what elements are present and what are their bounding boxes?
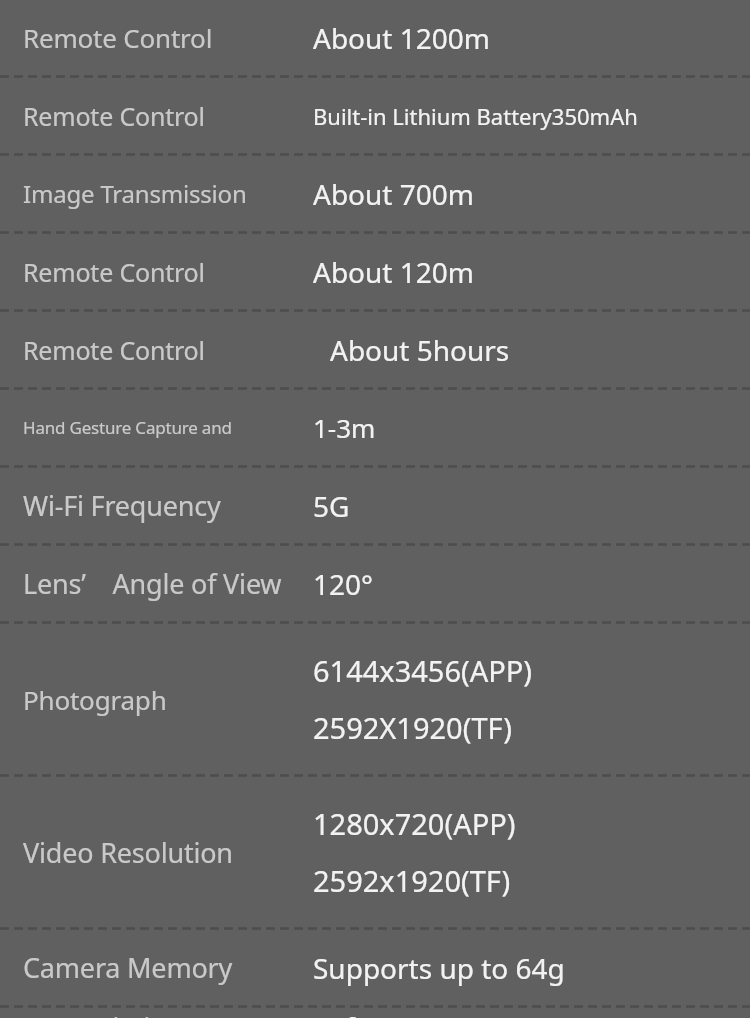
- button[interactable]: Photograph Resolution: [0, 624, 750, 774]
- staticText: Built-in Lithium Battery350mAh: [313, 101, 638, 131]
- button[interactable]: Hand Gesture Capture and Recognition: [0, 390, 750, 465]
- staticText: 1280x720(APP): [313, 804, 516, 843]
- staticText: Video Resolution: [23, 834, 233, 871]
- staticText: Remote Control Battery: [23, 99, 284, 133]
- button[interactable]: Remote Control Playtime: [0, 312, 750, 387]
- staticText: About 120m: [313, 253, 474, 291]
- button[interactable]: Image Transmission Range: [0, 156, 750, 231]
- staticText: Transmission Frequency: [23, 1008, 284, 1018]
- staticText: About 1200m: [313, 19, 490, 57]
- staticText: Photograph Resolution: [23, 682, 284, 717]
- staticText: 1-3m: [313, 410, 376, 445]
- staticText: About 700m: [313, 175, 474, 213]
- button[interactable]: Remote Control Range: [0, 0, 750, 75]
- staticText: 2592x1920(TF): [313, 861, 511, 900]
- button[interactable]: Remote Control Battery: [0, 78, 750, 153]
- staticText: Supports up to 64g: [313, 949, 565, 987]
- button[interactable]: Camera Memory: [0, 930, 750, 1005]
- staticText: Remote Control Range: [23, 20, 284, 55]
- staticText: 5G: [313, 487, 350, 525]
- staticText: Lens’ Angle of View: [23, 565, 282, 602]
- button[interactable]: Transmission Frequency: [0, 1008, 750, 1018]
- staticText: About 5hours: [330, 331, 510, 369]
- staticText: Remote Control Playtime: [23, 333, 284, 367]
- staticText: 120°: [313, 565, 374, 603]
- staticText: 6144x3456(APP): [313, 651, 533, 690]
- button[interactable]: Wi-Fi Frequency: [0, 468, 750, 543]
- staticText: Remote Control Altitude: [23, 255, 284, 289]
- button[interactable]: Video Resolution: [0, 777, 750, 927]
- staticText: Camera Memory: [23, 949, 233, 986]
- staticText: Image Transmission Range: [23, 177, 284, 210]
- button[interactable]: Lens’ Angle of View: [0, 546, 750, 621]
- staticText: Hand Gesture Capture and Recognition: [23, 416, 284, 439]
- staticText: 2592X1920(TF): [313, 708, 512, 747]
- button[interactable]: Remote Control Altitude: [0, 234, 750, 309]
- staticText: Wi-Fi Frequency: [23, 487, 221, 524]
- staticText: 25fps: [313, 1008, 386, 1018]
